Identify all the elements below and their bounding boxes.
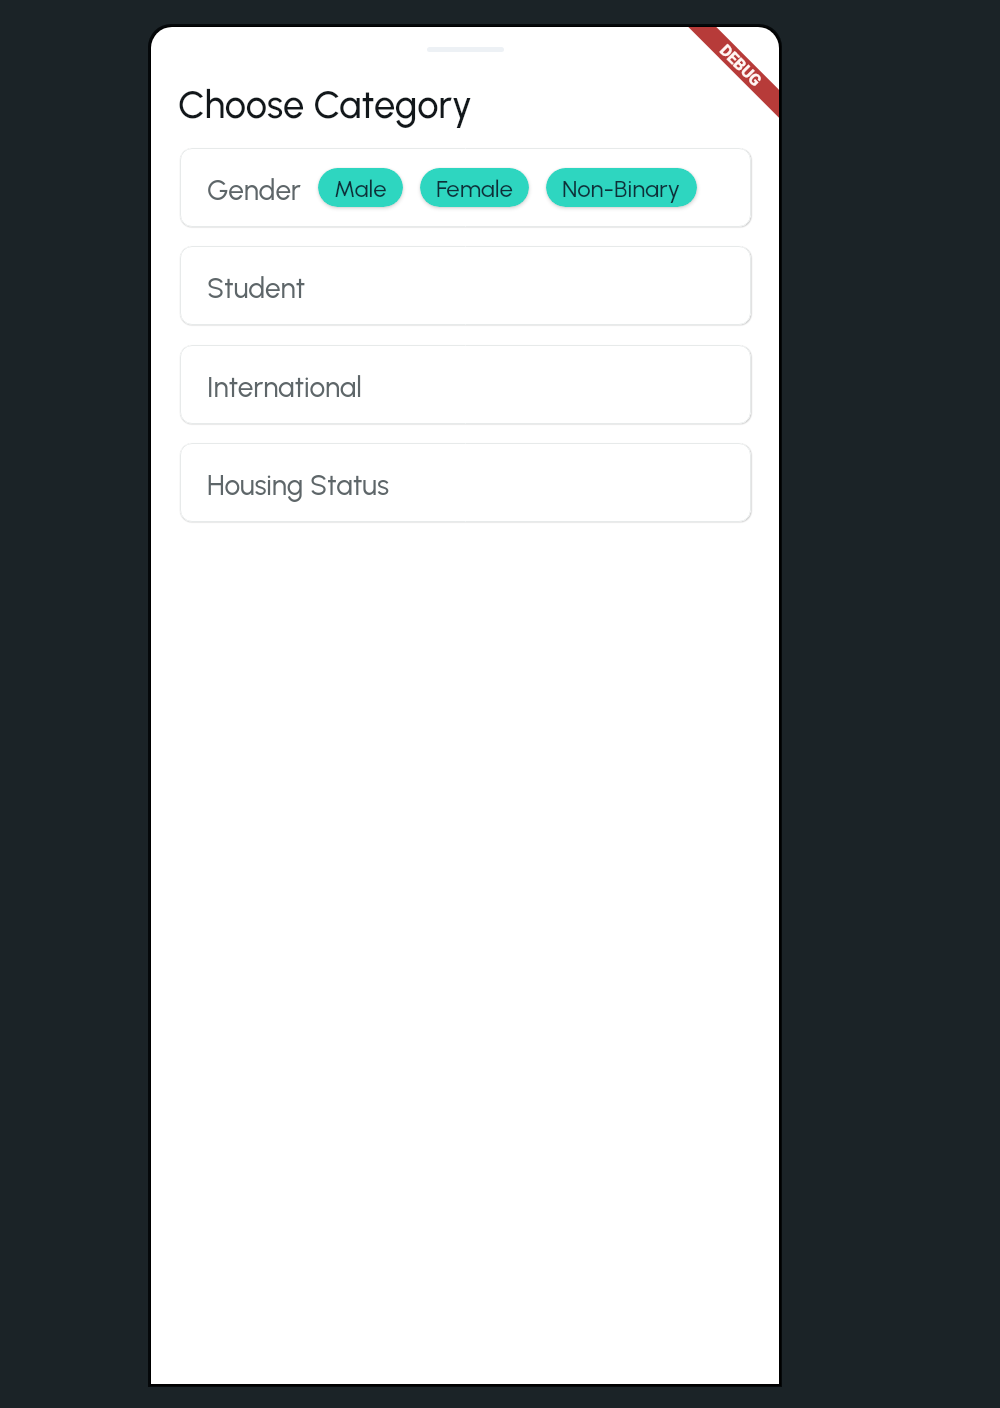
- button[interactable]: Male: [318, 168, 403, 207]
- staticText: DEBUG: [715, 40, 766, 90]
- staticText: Non-Binary: [562, 174, 681, 203]
- staticText: Choose Category: [178, 82, 473, 128]
- staticText: Female: [436, 174, 513, 203]
- staticText: Gender: [207, 173, 301, 207]
- button[interactable]: Gender: [180, 148, 751, 227]
- staticText: Student: [207, 271, 306, 305]
- button[interactable]: Student: [180, 246, 751, 325]
- staticText: Male: [334, 174, 387, 203]
- button[interactable]: International: [180, 345, 751, 424]
- button[interactable]: Non-Binary: [546, 168, 697, 207]
- button[interactable]: Housing Status: [180, 443, 751, 522]
- staticText: Housing Status: [207, 468, 389, 502]
- staticText: International: [207, 370, 362, 404]
- button[interactable]: Female: [420, 168, 529, 207]
